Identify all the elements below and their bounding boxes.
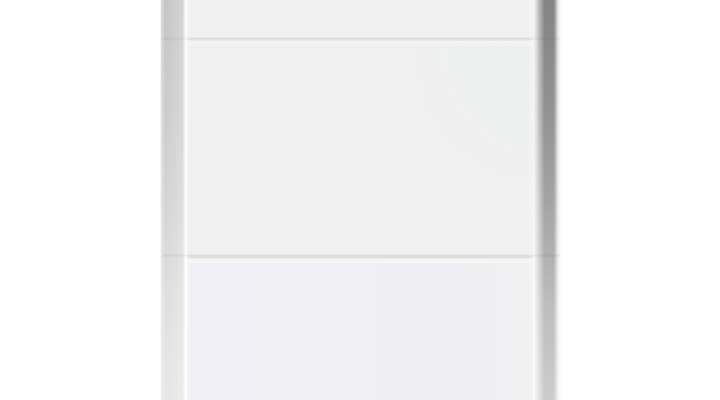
other: Phone app screen preview bbox=[0, 0, 720, 400]
